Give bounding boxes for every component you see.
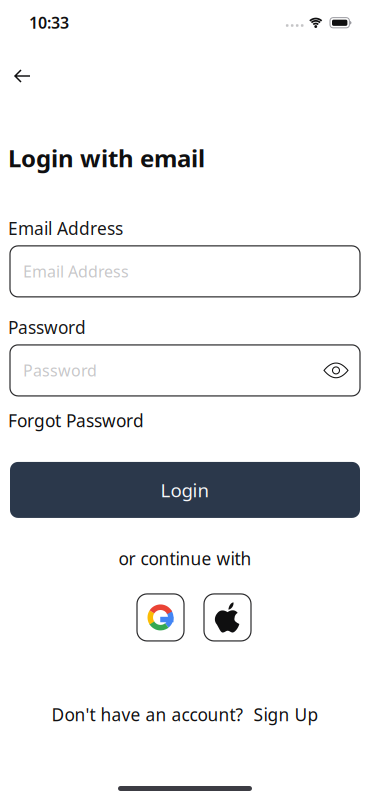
button[interactable]: Continue with Google (137, 594, 184, 641)
button[interactable]: Continue with Apple (204, 594, 251, 641)
staticText: Login with email (8, 142, 205, 174)
button[interactable]: Sign Up (248, 703, 318, 726)
staticText: Sign Up (248, 703, 318, 726)
button[interactable]: Email Address (10, 246, 360, 297)
button[interactable]: Login (0, 462, 370, 518)
staticText: Forgot Password (8, 409, 144, 432)
staticText: Password (23, 360, 97, 381)
staticText: Login (160, 477, 209, 502)
button[interactable]: Forgot Password (0, 407, 144, 434)
staticText: Email Address (8, 217, 123, 240)
staticText: Password (8, 316, 86, 339)
button[interactable]: Back (0, 53, 46, 99)
button[interactable]: Password (10, 345, 312, 396)
staticText: Don't have an account? (51, 703, 248, 726)
staticText: or continue with (118, 547, 251, 570)
staticText: 10:33 (29, 12, 69, 33)
staticText: Email Address (23, 261, 129, 282)
button[interactable]: Show password (312, 345, 360, 396)
